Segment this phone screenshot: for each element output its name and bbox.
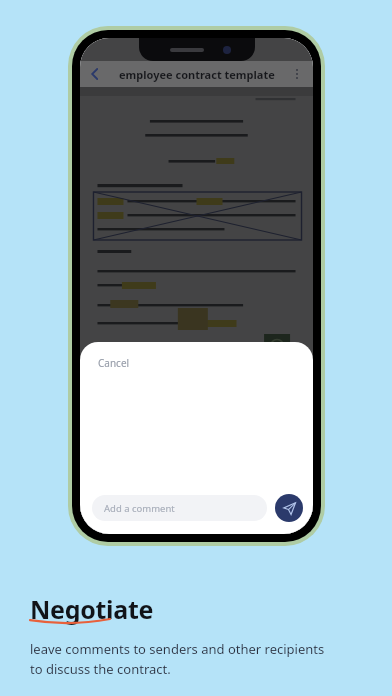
staticText: leave comments to senders and other reci… bbox=[30, 640, 325, 678]
button[interactable]: Cancel bbox=[96, 354, 132, 372]
staticText: Add a comment bbox=[104, 502, 175, 515]
staticText: Negotiate bbox=[30, 592, 154, 626]
button[interactable]: More options bbox=[287, 64, 307, 84]
button[interactable]: Add a comment bbox=[92, 495, 267, 521]
button[interactable]: Back bbox=[84, 63, 106, 85]
staticText: employee contract template bbox=[119, 67, 275, 82]
button[interactable]: Send comment bbox=[275, 494, 303, 522]
staticText: Cancel bbox=[98, 356, 130, 370]
